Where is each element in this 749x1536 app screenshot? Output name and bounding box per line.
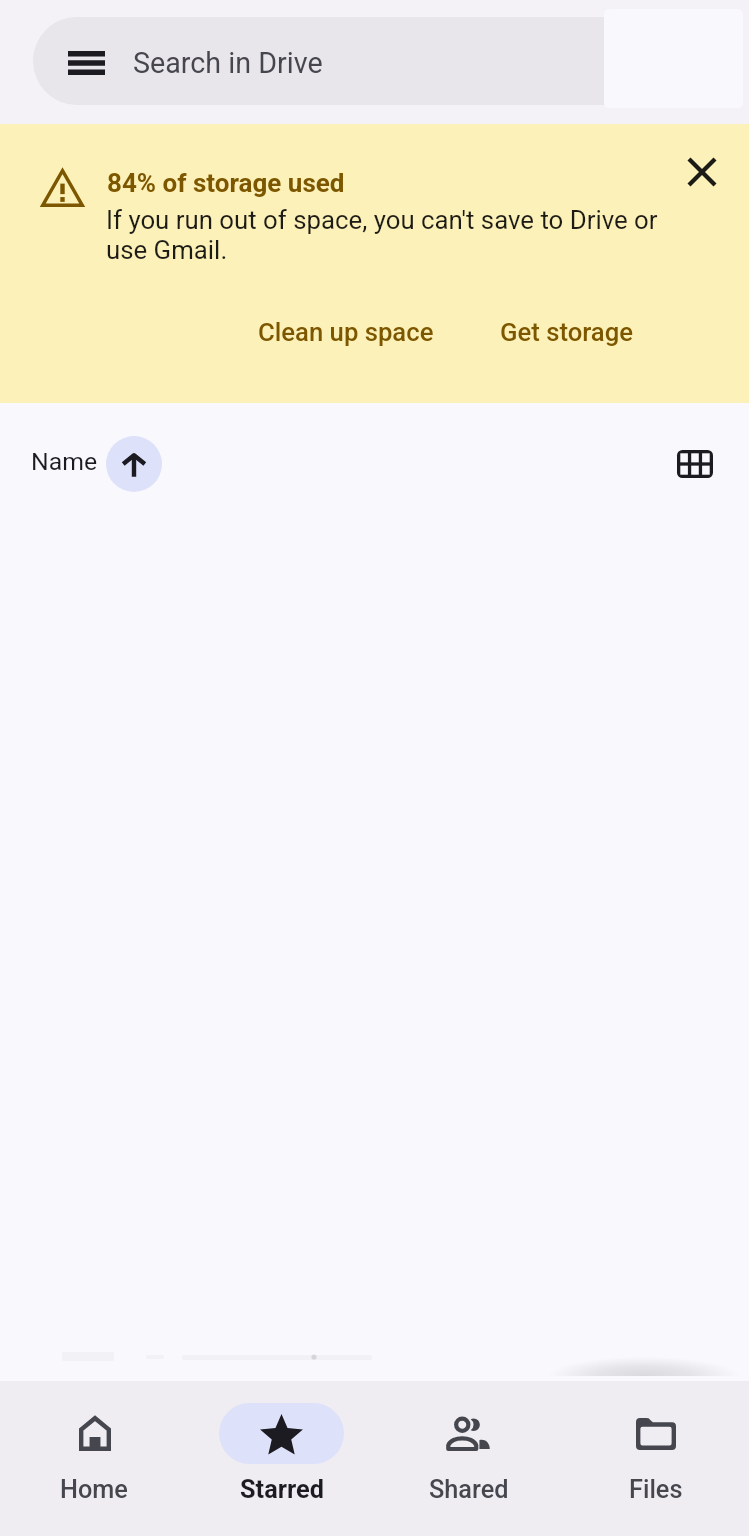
other: Open navigation menu bbox=[68, 51, 105, 75]
button[interactable]: Get storage bbox=[488, 304, 646, 358]
staticText: Search in Drive bbox=[133, 41, 323, 81]
button[interactable]: Starred bbox=[188, 1381, 375, 1536]
staticText: Starred bbox=[240, 1473, 324, 1505]
button[interactable]: Files bbox=[562, 1381, 749, 1536]
staticText: If you run out of space, you can't save … bbox=[106, 199, 658, 237]
staticText: 84% of storage used bbox=[107, 167, 345, 199]
staticText: Name bbox=[31, 445, 98, 477]
button[interactable]: Home bbox=[0, 1381, 188, 1536]
button[interactable]: Name bbox=[22, 417, 171, 511]
button[interactable]: Dismiss bbox=[670, 140, 734, 204]
staticText: Files bbox=[629, 1473, 683, 1505]
staticText: use Gmail. bbox=[106, 229, 228, 267]
button[interactable]: Clean up space bbox=[246, 304, 446, 358]
staticText: Get storage bbox=[500, 314, 634, 348]
staticText: Shared bbox=[429, 1473, 509, 1505]
button[interactable]: Open navigation menu bbox=[33, 17, 673, 105]
staticText: Clean up space bbox=[258, 314, 434, 348]
button[interactable]: Shared bbox=[375, 1381, 562, 1536]
staticText: Home bbox=[60, 1473, 128, 1505]
button[interactable]: Switch to grid view bbox=[659, 428, 731, 500]
